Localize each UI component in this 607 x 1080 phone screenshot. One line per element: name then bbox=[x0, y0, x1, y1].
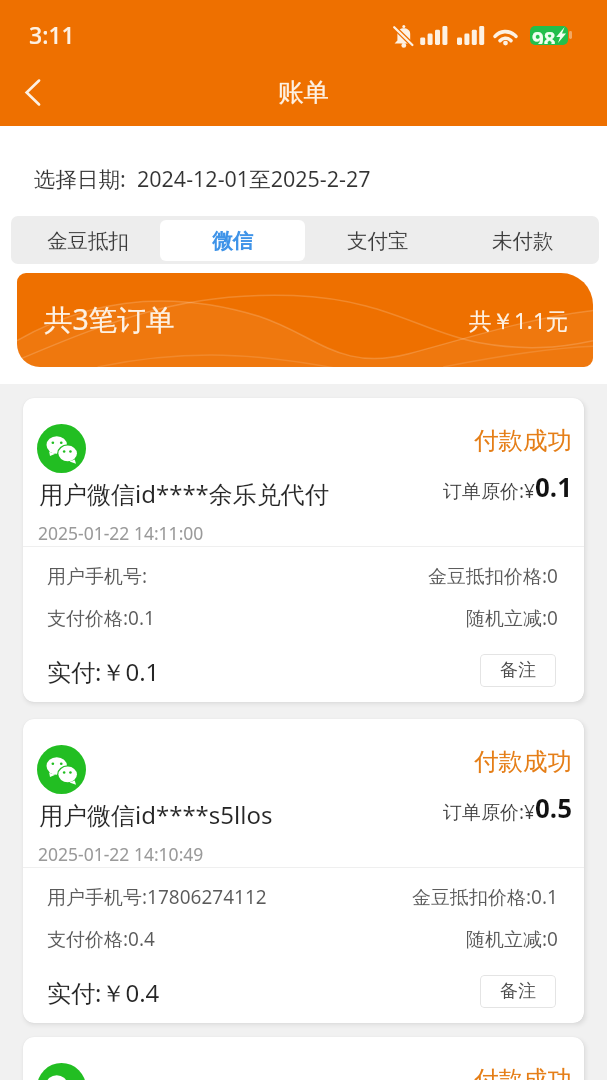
staticText: 2025-01-22 14:11:00 bbox=[38, 521, 204, 545]
staticText: 微信 bbox=[212, 228, 253, 254]
button[interactable]: 付款成功 bbox=[23, 719, 584, 1023]
staticText: 支付宝 bbox=[347, 228, 409, 254]
staticText: 付款成功 bbox=[474, 425, 572, 456]
staticText: 支付价格:0.4 bbox=[47, 926, 155, 952]
button[interactable]: 共3笔订单 bbox=[17, 273, 593, 367]
staticText: 订单原价:¥ bbox=[443, 478, 535, 504]
staticText: 订单原价:¥ bbox=[443, 799, 535, 825]
staticText: 付款成功 bbox=[474, 1064, 572, 1080]
staticText: 备注 bbox=[500, 980, 536, 1003]
button[interactable]: Back bbox=[9, 69, 56, 116]
staticText: 账单 bbox=[0, 76, 607, 108]
staticText: 共￥1.1元 bbox=[469, 305, 569, 336]
button[interactable]: 付款成功 bbox=[23, 398, 584, 702]
staticText: 实付:￥0.1 bbox=[47, 655, 160, 688]
staticText: 用户微信id****s5llos bbox=[39, 798, 273, 831]
staticText: 98 bbox=[532, 26, 556, 44]
staticText: 付款成功 bbox=[474, 746, 572, 777]
staticText: 未付款 bbox=[492, 228, 554, 254]
staticText: 3:11 bbox=[29, 19, 75, 50]
staticText: 用户微信id****余乐兑代付 bbox=[39, 477, 329, 510]
button[interactable]: 付款成功 bbox=[23, 1037, 584, 1080]
staticText: 随机立减:0 bbox=[466, 926, 558, 952]
button[interactable]: 未付款 bbox=[450, 220, 595, 261]
staticText: 金豆抵扣价格:0 bbox=[428, 563, 558, 589]
button[interactable]: 备注 bbox=[480, 975, 556, 1008]
staticText: 实付:￥0.4 bbox=[47, 976, 160, 1009]
staticText: 金豆抵扣 bbox=[47, 228, 129, 254]
staticText: 用户手机号:17806274112 bbox=[47, 884, 267, 910]
staticText: 金豆抵扣价格:0.1 bbox=[412, 884, 558, 910]
staticText: 选择日期: 2024-12-01至2025-2-27 bbox=[34, 164, 371, 193]
staticText: 2025-01-22 14:10:49 bbox=[38, 842, 204, 866]
button[interactable]: 支付宝 bbox=[305, 220, 450, 261]
staticText: 用户手机号: bbox=[47, 563, 148, 589]
button[interactable]: 微信 bbox=[160, 220, 305, 261]
staticText: 备注 bbox=[500, 659, 536, 682]
button[interactable]: 金豆抵扣 bbox=[15, 220, 160, 261]
staticText: 0.1 bbox=[535, 469, 573, 504]
staticText: 支付价格:0.1 bbox=[47, 605, 155, 631]
staticText: 共3笔订单 bbox=[44, 300, 175, 339]
button[interactable]: 备注 bbox=[480, 654, 556, 687]
staticText: 0.5 bbox=[535, 790, 573, 825]
staticText: 随机立减:0 bbox=[466, 605, 558, 631]
